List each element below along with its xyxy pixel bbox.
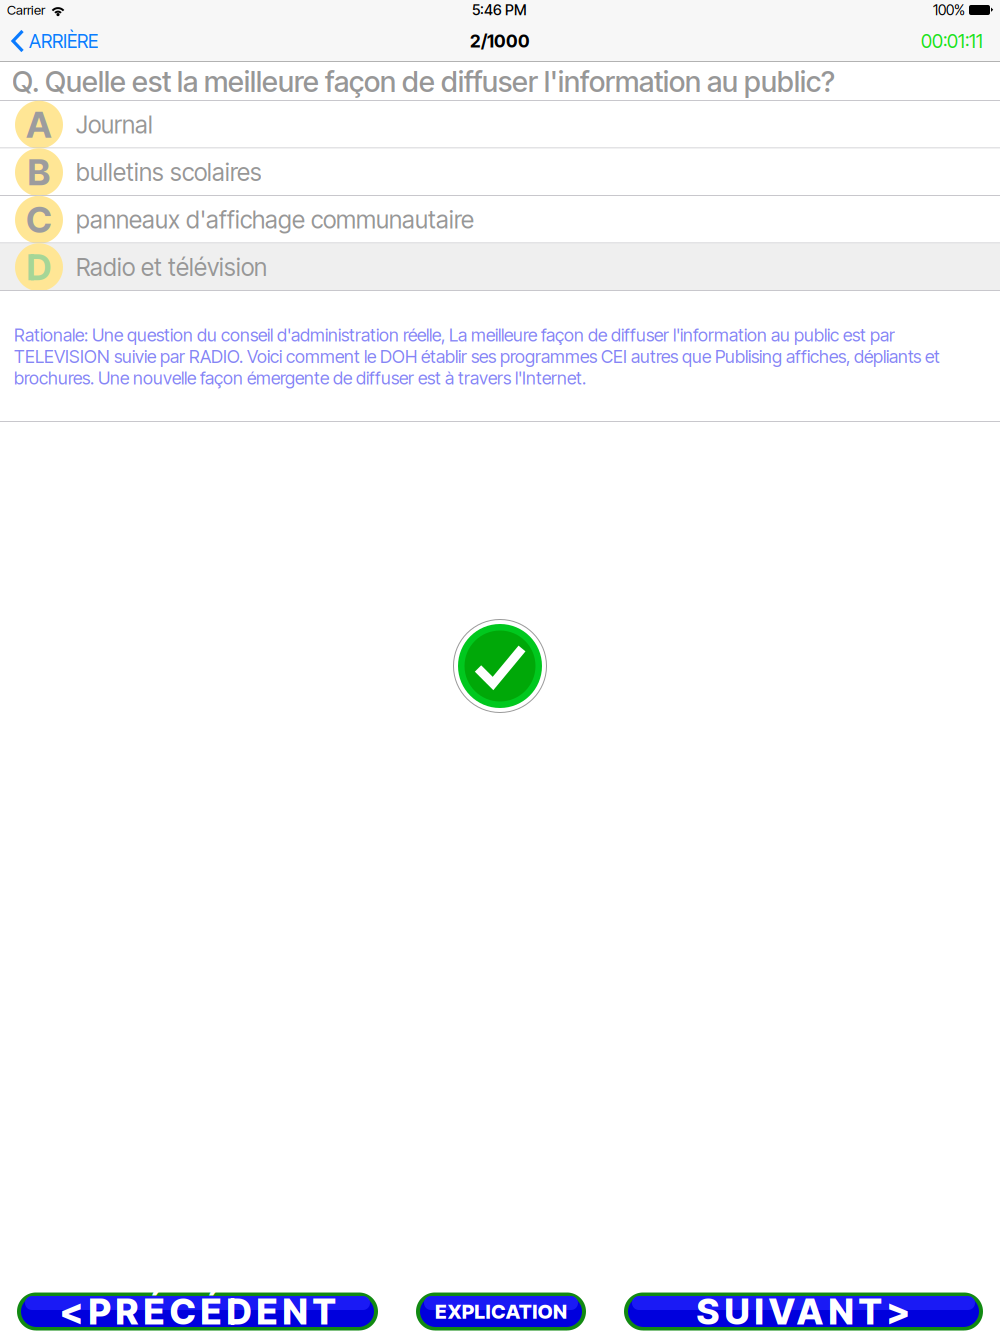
staticText: Radio et télévision xyxy=(76,253,267,282)
staticText: 100% xyxy=(933,1,965,19)
staticText: ARRIÈRE xyxy=(29,29,98,52)
staticText: panneaux d'affichage communautaire xyxy=(76,205,474,234)
staticText: 2/1000 xyxy=(470,30,530,52)
staticText: Q. Quelle est la meilleure façon de diff… xyxy=(12,64,835,99)
staticText: SUIVANT> xyxy=(696,1290,910,1333)
staticText: D xyxy=(26,245,51,289)
staticText: Carrier xyxy=(7,2,45,18)
staticText: 5:46 PM xyxy=(472,1,527,19)
staticText: C xyxy=(26,198,52,242)
button[interactable]: A xyxy=(0,101,1000,148)
staticText: Rationale: Une question du conseil d'adm… xyxy=(14,324,940,389)
button[interactable]: EXPLICATION xyxy=(416,1292,586,1330)
button[interactable]: SUIVANT> xyxy=(624,1292,983,1330)
staticText: <PRÉCÉDENT xyxy=(59,1290,335,1333)
staticText: A xyxy=(26,103,52,147)
button[interactable]: <PRÉCÉDENT xyxy=(17,1292,378,1330)
staticText: B xyxy=(27,150,50,194)
button[interactable]: B xyxy=(0,148,1000,196)
staticText: 00:01:11 xyxy=(921,29,983,52)
staticText: Journal xyxy=(76,110,153,139)
staticText: EXPLICATION xyxy=(435,1299,567,1324)
button[interactable]: D xyxy=(0,243,1000,291)
staticText: bulletins scolaires xyxy=(76,158,262,187)
button[interactable]: ARRIÈRE xyxy=(0,20,106,62)
button[interactable]: C xyxy=(0,196,1000,243)
